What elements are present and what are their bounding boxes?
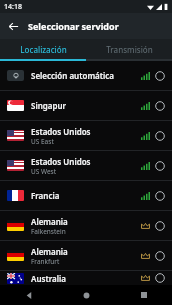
staticText: Estados Unidos xyxy=(31,156,91,167)
button[interactable]: Estados Unidos xyxy=(0,121,172,150)
button[interactable]: Alemania xyxy=(0,241,172,270)
staticText: Selección automática xyxy=(31,70,141,81)
button[interactable]: Singapur xyxy=(0,91,172,120)
button[interactable]: Francia xyxy=(0,181,172,210)
button[interactable]: Back xyxy=(0,285,58,305)
staticText: Seleccionar servidor xyxy=(28,20,119,32)
button[interactable]: Home xyxy=(58,285,115,305)
button[interactable]: Recent apps xyxy=(115,285,172,305)
button[interactable]: Estados Unidos xyxy=(0,151,172,180)
button[interactable]: Australia xyxy=(0,271,172,285)
button[interactable]: Transmisión xyxy=(86,39,172,59)
staticText: Localización xyxy=(20,44,67,55)
staticText: 14:18 xyxy=(4,2,22,12)
staticText: Alemania xyxy=(31,216,68,227)
staticText: Francia xyxy=(31,190,60,201)
button[interactable]: Alemania xyxy=(0,211,172,240)
staticText: Estados Unidos xyxy=(31,126,91,137)
staticText: US West xyxy=(31,167,57,176)
staticText: Alemania xyxy=(31,246,68,257)
staticText: Australia xyxy=(31,273,66,284)
button[interactable]: Back xyxy=(0,13,26,39)
staticText: Singapur xyxy=(31,100,67,111)
staticText: Frankfurt xyxy=(31,257,60,266)
staticText: US East xyxy=(31,137,54,146)
button[interactable]: Selección automática xyxy=(0,61,172,90)
button[interactable]: Localización xyxy=(0,39,86,59)
staticText: Transmisión xyxy=(106,44,153,55)
staticText: Falkenstein xyxy=(31,227,66,236)
